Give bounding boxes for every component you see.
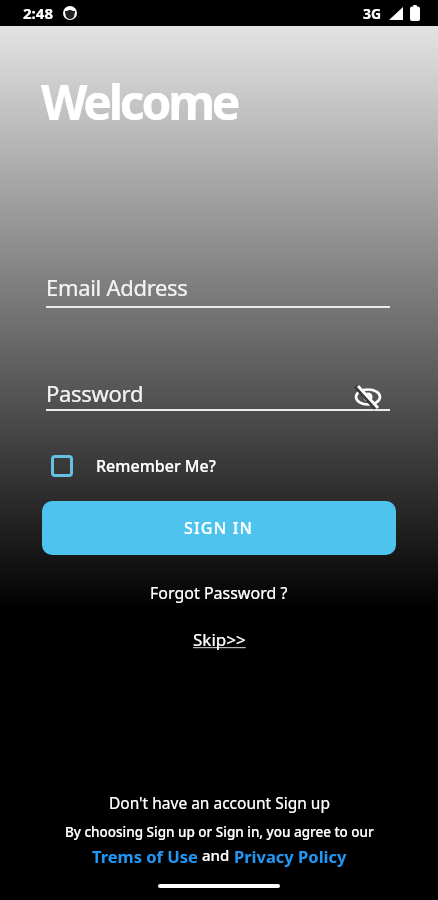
staticText: and [198, 845, 234, 865]
staticText: 2:48 [23, 3, 53, 23]
button[interactable]: Privacy Policy [234, 845, 347, 867]
button[interactable]: Forgot Password ? [150, 582, 288, 604]
button[interactable]: SIGN IN [42, 501, 396, 555]
staticText: Password [46, 378, 144, 408]
staticText: Remember Me? [96, 455, 216, 477]
staticText: SIGN IN [184, 517, 254, 539]
button[interactable]: Skip>> [193, 628, 246, 651]
button[interactable]: Trems of Use [92, 845, 198, 867]
staticText: Welcome [41, 69, 238, 134]
staticText: By choosing Sign up or Sign in, you agre… [65, 823, 374, 841]
button[interactable]: Don't have an account Sign up [109, 792, 330, 813]
staticText: Email Address [46, 272, 188, 302]
button[interactable] [352, 384, 384, 410]
button[interactable]: Remember Me? [51, 455, 216, 477]
staticText: 3G [363, 4, 382, 23]
